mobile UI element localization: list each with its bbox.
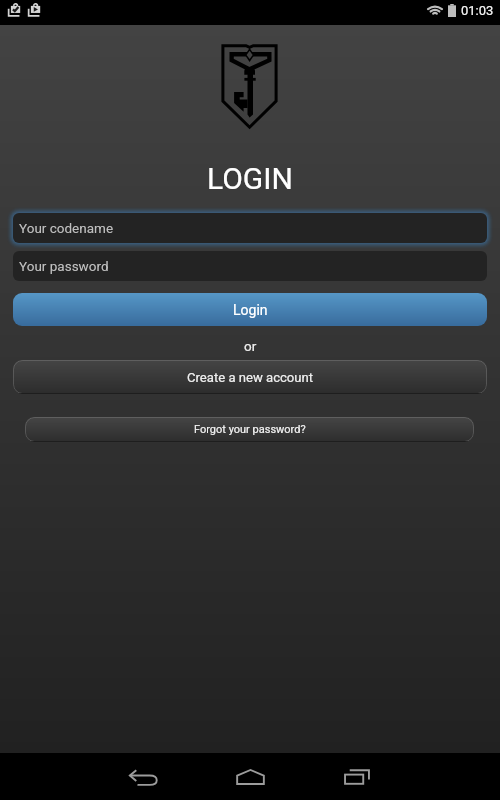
staticText: 01:03 (461, 3, 494, 18)
button[interactable]: Recent apps (333, 753, 381, 800)
staticText: Your password (19, 258, 109, 274)
button[interactable]: Your codename (13, 213, 487, 243)
staticText: Your codename (19, 220, 114, 236)
staticText: Forgot your password? (194, 423, 306, 436)
button[interactable]: Your password (13, 251, 487, 281)
staticText: Create a new account (187, 370, 314, 385)
button[interactable]: Create a new account (13, 360, 487, 394)
staticText: Login (233, 302, 268, 318)
button[interactable]: Login (13, 293, 487, 326)
button[interactable]: Home (226, 753, 274, 800)
button[interactable]: Forgot your password? (25, 417, 474, 442)
staticText: or (244, 338, 257, 354)
button[interactable]: Back (119, 753, 167, 800)
staticText: LOGIN (207, 161, 293, 196)
